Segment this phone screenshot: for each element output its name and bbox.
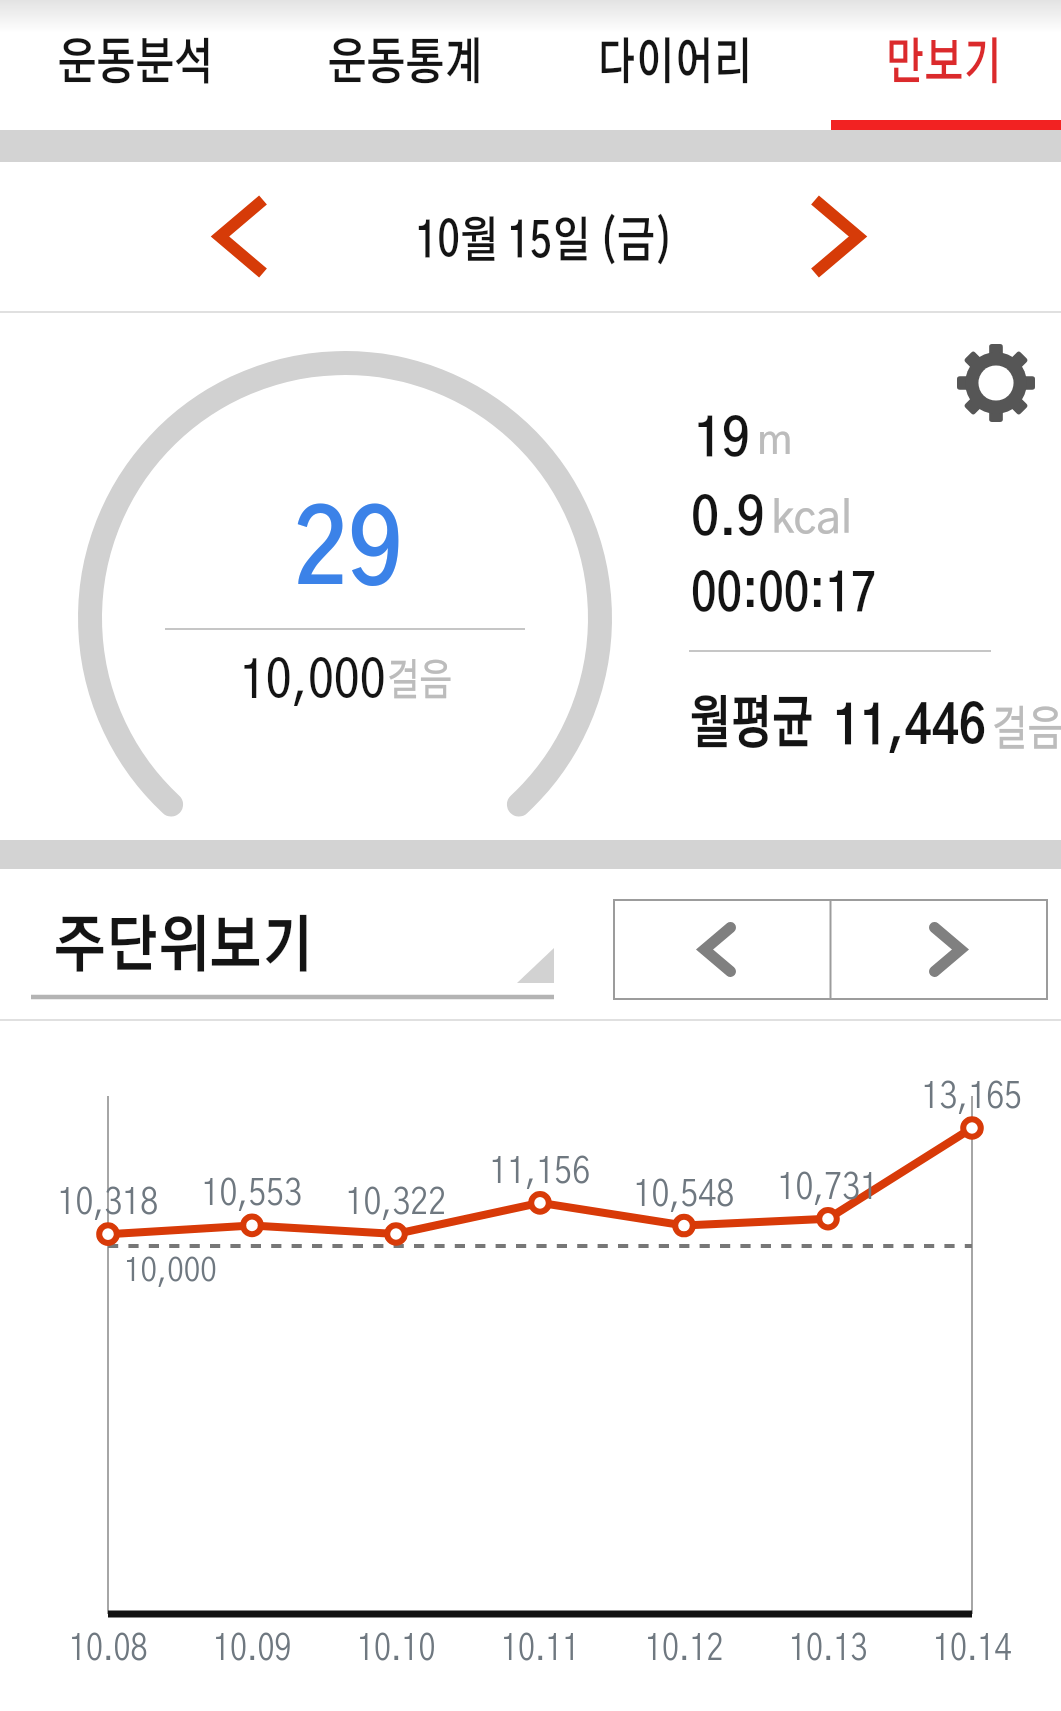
staticText: 다이어리 — [597, 39, 752, 89]
button[interactable]: 이전 날짜 — [156, 162, 326, 311]
staticText: 10.09 — [213, 1631, 292, 1667]
staticText: 10,322 — [345, 1184, 446, 1221]
staticText: 13,165 — [921, 1078, 1022, 1115]
staticText: 10,553 — [201, 1175, 302, 1212]
staticText: m — [757, 420, 793, 462]
button[interactable]: 다음 날짜 — [751, 162, 921, 311]
staticText: 10,731 — [777, 1169, 878, 1206]
staticText: 10.13 — [789, 1631, 868, 1667]
staticText: 19 — [694, 415, 750, 467]
staticText: 10.14 — [933, 1631, 1012, 1667]
staticText: 10,548 — [633, 1176, 734, 1213]
staticText: 걸음 — [387, 660, 452, 704]
button[interactable]: 이전 주 — [609, 900, 825, 999]
staticText: 운동분석 — [58, 39, 213, 89]
staticText: 11,446 — [833, 702, 986, 755]
staticText: 10.10 — [357, 1631, 436, 1667]
staticText: 29 — [293, 502, 404, 605]
button[interactable]: 다이어리 — [542, 0, 806, 130]
staticText: 10,000 — [124, 1255, 218, 1288]
staticText: 11,156 — [489, 1153, 590, 1190]
button[interactable]: 운동분석 — [3, 0, 267, 130]
staticText: 10,318 — [57, 1184, 158, 1221]
staticText: 10.08 — [69, 1631, 148, 1667]
button[interactable]: 운동통계 — [273, 0, 537, 130]
staticText: kcal — [771, 498, 853, 542]
button[interactable]: 만보기 — [812, 0, 1061, 130]
button[interactable]: 다음 주 — [839, 900, 1055, 999]
staticText: 만보기 — [885, 39, 1002, 89]
staticText: 주단위보기 — [54, 917, 314, 978]
staticText: 10월 15일 (금) — [415, 218, 674, 267]
staticText: 00:00:17 — [691, 570, 877, 622]
staticText: 운동통계 — [328, 39, 483, 89]
button[interactable]: 설정 — [952, 339, 1040, 427]
staticText: 10.11 — [501, 1631, 580, 1667]
button[interactable]: 주단위보기 — [31, 897, 554, 999]
staticText: 10,000 — [240, 656, 386, 708]
staticText: 10.12 — [645, 1631, 724, 1667]
staticText: 0.9 — [691, 494, 765, 546]
staticText: 걸음 — [992, 707, 1061, 755]
staticText: 월평균 — [689, 698, 814, 755]
